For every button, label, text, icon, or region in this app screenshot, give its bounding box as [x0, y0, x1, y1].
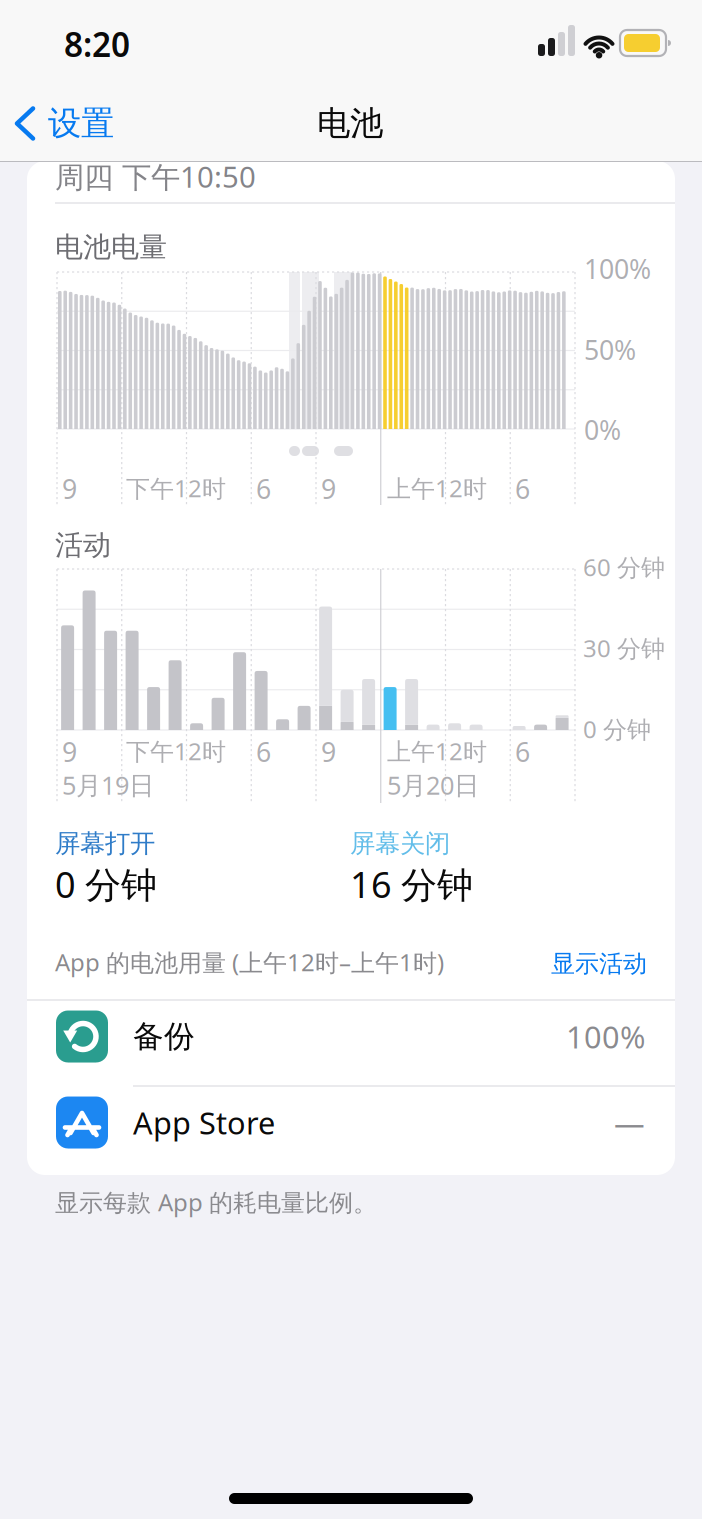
staticText: 6	[256, 471, 271, 506]
staticText: 上午12时	[387, 472, 487, 504]
staticText: 50%	[584, 332, 636, 367]
staticText: 下午12时	[126, 735, 226, 767]
staticText: 60 分钟	[583, 551, 665, 583]
staticText: 设置	[48, 103, 114, 144]
staticText: 电池	[317, 103, 383, 144]
staticText: 16 分钟	[350, 860, 473, 908]
staticText: 0 分钟	[583, 713, 651, 745]
staticText: 30 分钟	[583, 632, 665, 664]
staticText: 5月20日	[387, 768, 479, 802]
staticText: 上午12时	[387, 735, 487, 767]
staticText: 屏幕关闭	[350, 828, 450, 859]
staticText: 9	[321, 734, 336, 769]
button[interactable]: 设置	[14, 103, 114, 144]
staticText: App Store	[133, 1102, 275, 1143]
staticText: —	[614, 1102, 645, 1143]
staticText: 活动	[55, 528, 111, 562]
staticText: 备份	[133, 1018, 195, 1055]
staticText: 屏幕打开	[55, 828, 155, 859]
staticText: App 的电池用量 (上午12时–上午1时)	[55, 946, 444, 978]
staticText: 电池电量	[55, 230, 167, 264]
staticText: 下午12时	[126, 472, 226, 504]
staticText: 100%	[566, 1016, 645, 1057]
staticText: 6	[256, 734, 271, 769]
staticText: 9	[321, 471, 336, 506]
button[interactable]: App Store	[27, 1086, 675, 1172]
button[interactable]: 显示活动	[551, 949, 647, 978]
button[interactable]: 屏幕关闭	[350, 828, 473, 908]
staticText: 5月19日	[62, 768, 154, 802]
button[interactable]: 备份	[27, 1000, 675, 1086]
staticText: 0%	[584, 412, 621, 447]
staticText: 6	[515, 734, 530, 769]
staticText: 8:20	[64, 22, 130, 66]
staticText: 9	[62, 471, 77, 506]
button[interactable]: 屏幕打开	[55, 828, 157, 908]
staticText: 100%	[584, 251, 651, 286]
staticText: 周四 下午10:50	[55, 157, 256, 196]
staticText: 9	[62, 734, 77, 769]
staticText: 显示活动	[551, 949, 647, 978]
staticText: 6	[515, 471, 530, 506]
staticText: 显示每款 App 的耗电量比例。	[55, 1186, 377, 1218]
staticText: 0 分钟	[55, 860, 157, 908]
